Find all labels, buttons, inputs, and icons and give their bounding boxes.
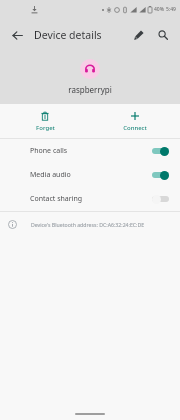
button[interactable]: Contact sharing (0, 187, 180, 211)
button[interactable]: Back (5, 23, 29, 47)
staticText: raspberrypi (68, 84, 112, 95)
staticText: Device's Bluetooth address: DC:A6:32:24:… (31, 221, 145, 228)
button[interactable]: Phone calls (0, 139, 180, 163)
button[interactable]: Media audio (0, 163, 180, 187)
button[interactable]: Search (151, 23, 175, 47)
staticText: Device details (34, 28, 127, 42)
staticText: Connect (123, 124, 147, 132)
staticText: 5:49 (166, 6, 176, 13)
button[interactable]: Forget (0, 108, 90, 135)
staticText: Forget (36, 124, 55, 132)
button[interactable]: Rename device (127, 23, 151, 47)
staticText: Media audio (30, 170, 152, 180)
staticText: 40% (154, 6, 164, 13)
staticText: Phone calls (30, 146, 152, 156)
staticText: Contact sharing (30, 194, 152, 204)
button[interactable]: Connect (90, 108, 180, 135)
